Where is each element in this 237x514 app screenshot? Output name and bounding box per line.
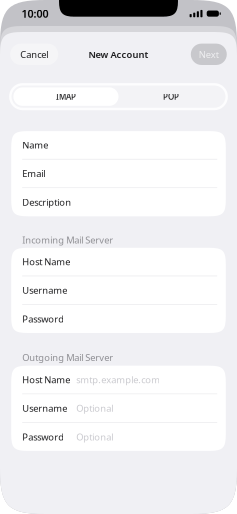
button[interactable]: POP (118, 87, 224, 106)
staticText: Incoming Mail Server (22, 234, 113, 246)
staticText: Cancel (20, 48, 48, 60)
button[interactable]: IMAP (13, 87, 118, 106)
staticText: Username (22, 284, 67, 296)
staticText: Outgoing Mail Server (22, 351, 113, 364)
staticText: Description (22, 196, 71, 208)
button[interactable]: Cancel (10, 44, 58, 65)
staticText: smtp.example.com (76, 373, 160, 386)
staticText: Email (22, 167, 45, 180)
staticText: Host Name (22, 373, 70, 386)
staticText: IMAP (56, 91, 76, 102)
staticText: Password (22, 431, 64, 443)
staticText: POP (163, 91, 179, 102)
staticText: Optional (76, 402, 113, 414)
staticText: Optional (76, 431, 113, 443)
staticText: 10:00 (21, 6, 48, 21)
staticText: Host Name (22, 255, 70, 268)
staticText: Username (22, 402, 67, 414)
button[interactable]: Next (191, 44, 227, 65)
staticText: Name (22, 139, 48, 151)
staticText: Password (22, 313, 64, 325)
staticText: Next (199, 48, 219, 60)
staticText: New Account (88, 48, 148, 60)
